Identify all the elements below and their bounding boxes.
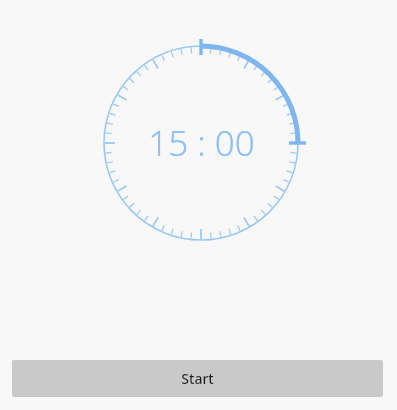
button[interactable]: Start [12,360,383,397]
staticText: 15 : 00 [148,119,255,167]
staticText: Start [181,369,214,388]
